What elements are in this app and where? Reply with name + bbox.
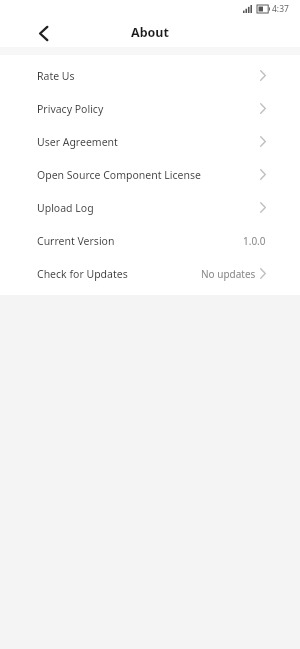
button[interactable]: Rate Us [0,59,300,92]
staticText: About [131,24,169,41]
staticText: 1.0.0 [243,234,266,248]
staticText: Check for Updates [37,267,128,281]
staticText: Privacy Policy [37,102,104,116]
button[interactable]: Privacy Policy [0,92,300,125]
staticText: Current Version [37,234,115,248]
staticText: Rate Us [37,69,75,83]
button[interactable]: Upload Log [0,191,300,224]
button[interactable]: Back [30,20,56,46]
button[interactable]: Check for Updates [0,257,300,290]
button[interactable]: Current Version [0,224,300,257]
staticText: No updates [201,267,256,281]
staticText: User Agreement [37,135,118,149]
button[interactable]: User Agreement [0,125,300,158]
button[interactable]: Open Source Component License [0,158,300,191]
staticText: 4:37 [272,3,289,15]
staticText: Open Source Component License [37,168,201,182]
staticText: Upload Log [37,201,94,215]
